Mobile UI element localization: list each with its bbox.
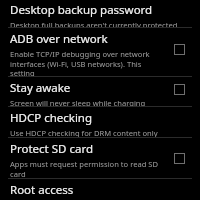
button[interactable]: Stay awake: [167, 80, 191, 106]
staticText: Root access: [10, 182, 74, 198]
staticText: Enable TCP/IP debugging over network: [10, 49, 150, 59]
button[interactable]: Stay awake: [0, 77, 200, 106]
button[interactable]: Root access: [0, 179, 200, 200]
staticText: HDCP checking: [10, 110, 93, 126]
staticText: interfaces (Wi-Fi, USB networks). This s…: [10, 59, 167, 76]
button[interactable]: ADB over network: [0, 28, 200, 76]
staticText: card: [10, 169, 26, 178]
staticText: Use HDCP checking for DRM content only: [10, 128, 158, 137]
staticText: Apps must request permission to read SD: [10, 159, 159, 169]
button[interactable]: Protect SD card: [0, 138, 200, 178]
staticText: ADB over network: [10, 31, 108, 47]
button[interactable]: ADB over network: [167, 31, 191, 76]
staticText: Desktop backup password: [10, 2, 153, 18]
staticText: Protect SD card: [10, 141, 93, 157]
staticText: Desktop full backups aren't currently pr…: [10, 20, 178, 27]
button[interactable]: HDCP checking: [0, 107, 200, 137]
button[interactable]: Protect SD card: [167, 141, 191, 178]
staticText: Screen will never sleep while charging: [10, 98, 146, 106]
staticText: Stay awake: [10, 80, 71, 96]
button[interactable]: Desktop backup password: [0, 0, 200, 27]
